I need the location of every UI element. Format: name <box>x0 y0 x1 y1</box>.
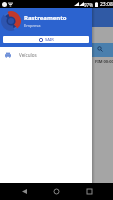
button[interactable]: SAIR <box>3 36 89 43</box>
staticText: FIM 00:00 <box>95 59 113 64</box>
button[interactable]: Recent apps <box>81 183 98 200</box>
button[interactable]: Back <box>16 183 33 200</box>
button[interactable]: Veículos <box>0 47 92 63</box>
staticText: 23:08 <box>100 1 113 8</box>
button[interactable]: Home <box>48 183 65 200</box>
staticText: 97% <box>84 2 93 8</box>
staticText: SAIR <box>45 37 54 42</box>
staticText: Empresa <box>24 23 41 28</box>
staticText: Veículos <box>19 52 37 58</box>
staticText: Rastreamento <box>24 14 67 22</box>
